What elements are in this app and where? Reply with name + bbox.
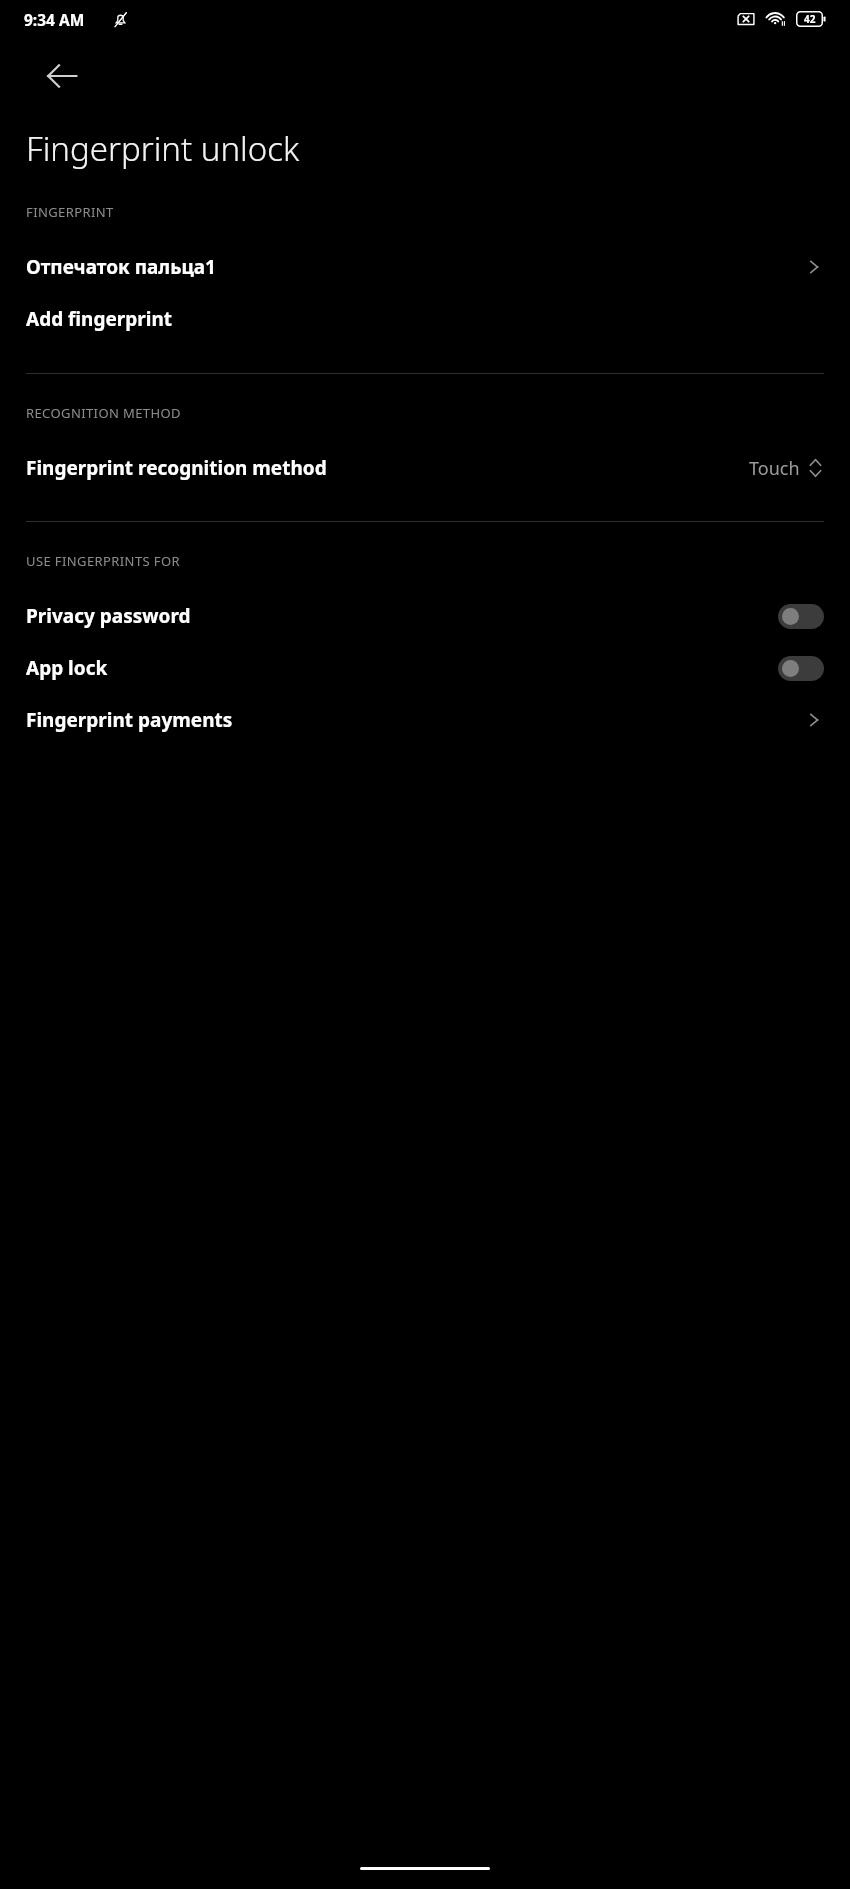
button[interactable]: Add fingerprint	[0, 293, 850, 345]
staticText: Fingerprint unlock	[26, 126, 300, 171]
staticText: Add fingerprint	[26, 306, 173, 332]
staticText: 42	[804, 12, 816, 26]
button[interactable]: Отпечаток пальца1	[0, 241, 850, 293]
staticText: Privacy password	[26, 603, 778, 629]
staticText: Fingerprint payments	[26, 707, 804, 733]
button[interactable]: Fingerprint payments	[0, 694, 850, 746]
button[interactable]: App lock	[0, 642, 850, 694]
staticText: Отпечаток пальца1	[26, 254, 804, 280]
staticText: Fingerprint recognition method	[26, 455, 749, 481]
staticText: RECOGNITION METHOD	[26, 404, 181, 422]
button[interactable]: Privacy password	[0, 590, 850, 642]
button[interactable]: Back	[36, 50, 88, 102]
staticText: FINGERPRINT	[26, 203, 114, 221]
staticText: Touch	[749, 456, 800, 481]
staticText: USE FINGERPRINTS FOR	[26, 552, 181, 570]
staticText: 9:34 AM	[24, 9, 85, 30]
button[interactable]: Fingerprint recognition method	[0, 442, 850, 494]
staticText: App lock	[26, 655, 778, 681]
